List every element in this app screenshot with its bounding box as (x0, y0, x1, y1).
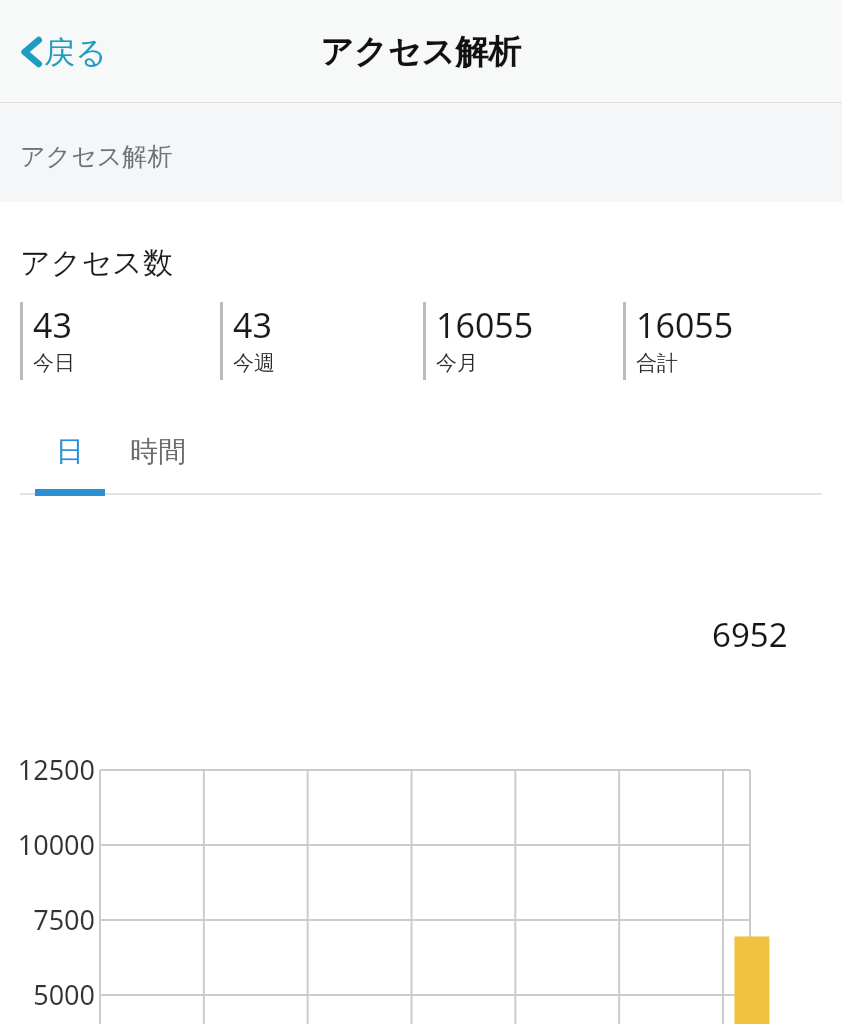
button[interactable]: 16055 (423, 302, 618, 382)
staticText: アクセス数 (20, 244, 173, 282)
staticText: 時間 (130, 434, 186, 469)
staticText: 合計 (636, 350, 678, 376)
staticText: 今日 (33, 350, 75, 376)
staticText: 戻る (44, 33, 107, 72)
staticText: 6952 (712, 612, 788, 657)
staticText: 日 (56, 434, 84, 469)
staticText: 7500 (0, 901, 95, 938)
button[interactable]: 時間 (117, 430, 199, 500)
staticText: 16055 (636, 302, 734, 348)
staticText: 12500 (0, 751, 95, 788)
staticText: アクセス解析 (320, 31, 522, 73)
button[interactable]: 日 (35, 430, 105, 500)
staticText: アクセス解析 (20, 141, 173, 172)
staticText: 43 (233, 302, 272, 348)
staticText: 5000 (0, 976, 95, 1013)
button[interactable]: 16055 (623, 302, 818, 382)
button[interactable]: 43 (20, 302, 215, 382)
staticText: 10000 (0, 826, 95, 863)
staticText: 今週 (233, 350, 275, 376)
staticText: 16055 (436, 302, 534, 348)
button[interactable]: 43 (220, 302, 415, 382)
staticText: 43 (33, 302, 72, 348)
button[interactable]: 戻る (8, 24, 117, 80)
staticText: 今月 (436, 350, 478, 376)
